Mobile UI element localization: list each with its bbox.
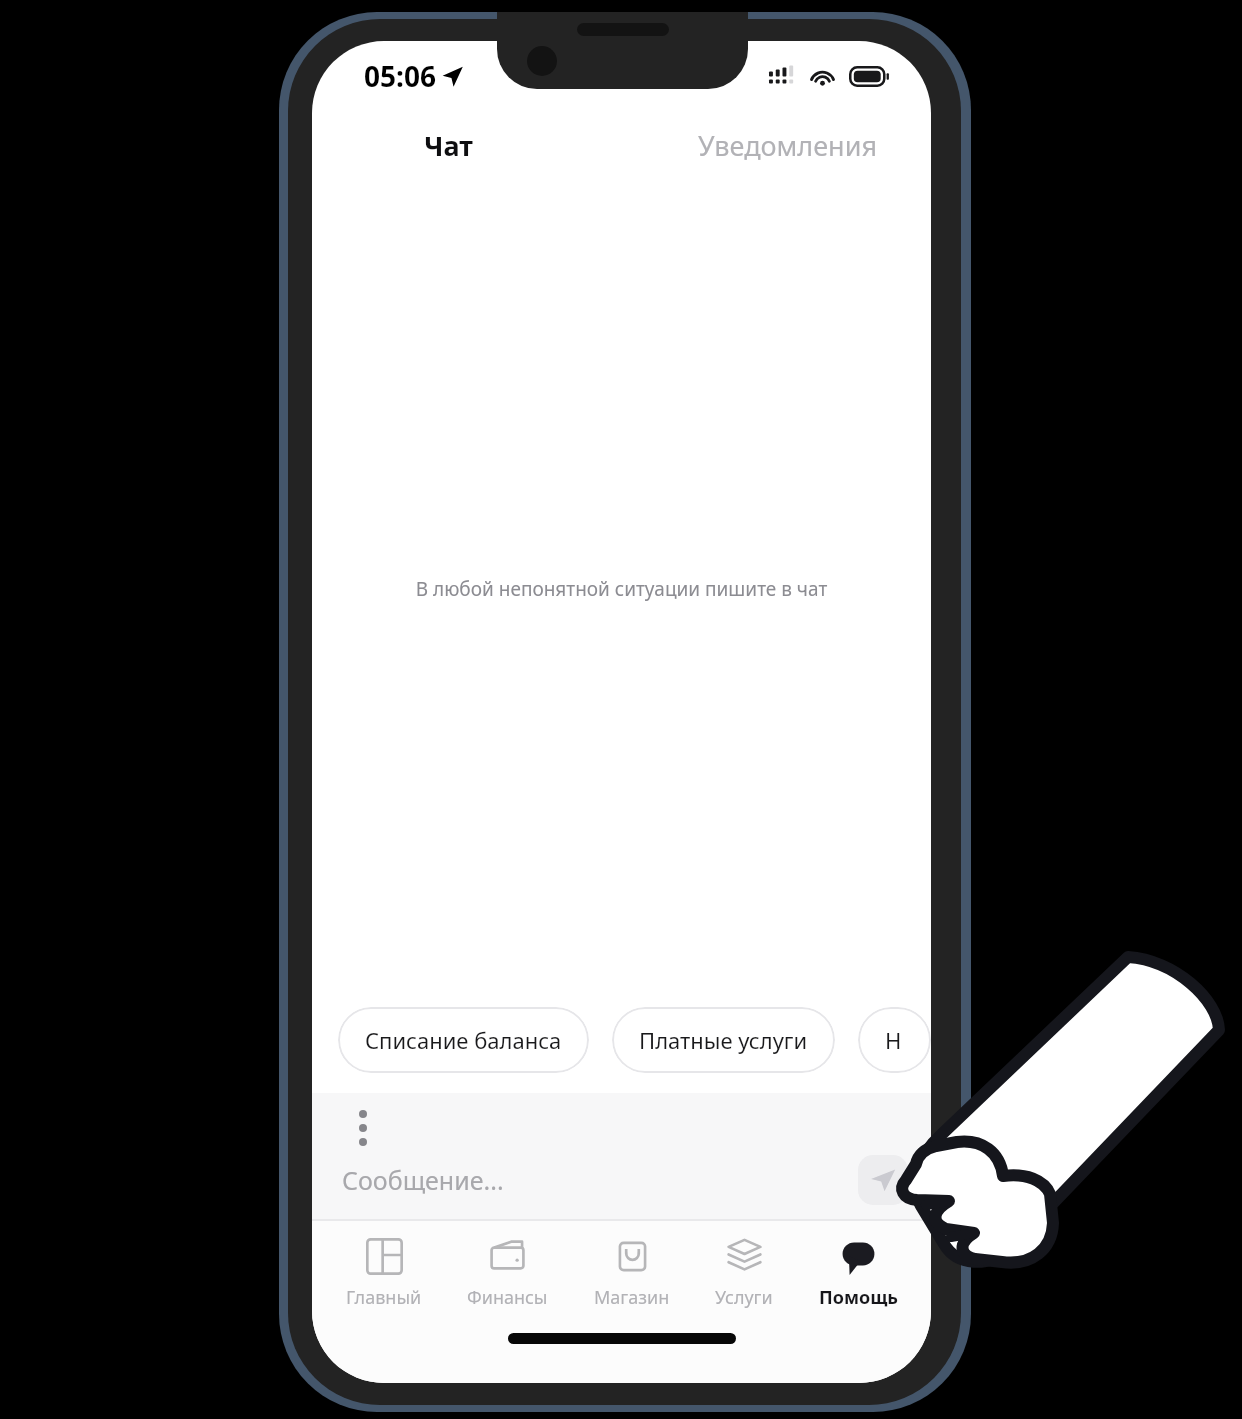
staticText: Чат	[424, 127, 473, 164]
button[interactable]: More options	[340, 1105, 386, 1151]
staticText: Не работа	[885, 1025, 904, 1055]
button[interactable]: Услуги	[703, 1232, 785, 1316]
staticText: Магазин	[594, 1285, 670, 1310]
staticText: Услуги	[715, 1285, 773, 1310]
staticText: 05:06	[364, 57, 436, 95]
button[interactable]: Платные услуги	[612, 1007, 835, 1073]
staticText: Финансы	[467, 1285, 548, 1310]
button[interactable]: Главный	[334, 1232, 434, 1316]
button[interactable]: Чат	[410, 118, 487, 173]
staticText: Главный	[346, 1285, 422, 1310]
staticText: Списание баланса	[365, 1025, 562, 1055]
button[interactable]: Уведомления	[684, 118, 892, 173]
staticText: Помощь	[819, 1285, 898, 1310]
button[interactable]: Не работа	[858, 1007, 931, 1073]
button[interactable]: Списание баланса	[338, 1007, 589, 1073]
staticText: Уведомления	[698, 127, 878, 164]
button[interactable]: Сообщение...	[338, 1159, 508, 1201]
button[interactable]: Send	[858, 1155, 908, 1205]
staticText: В любой непонятной ситуации пишите в чат	[312, 576, 931, 602]
button[interactable]: Магазин	[582, 1232, 682, 1316]
staticText: Платные услуги	[639, 1025, 808, 1055]
button[interactable]: Финансы	[455, 1232, 560, 1316]
button[interactable]: Помощь	[807, 1232, 910, 1316]
